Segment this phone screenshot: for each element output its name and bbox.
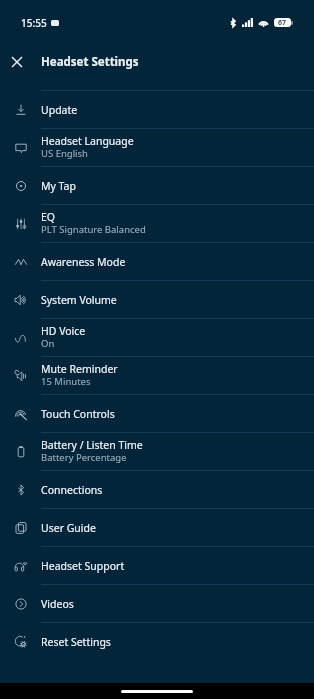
staticText: Videos (41, 597, 74, 611)
button[interactable]: Awareness Mode (0, 243, 314, 281)
staticText: Reset Settings (41, 635, 111, 649)
staticText: User Guide (41, 521, 96, 535)
staticText: System Volume (41, 293, 117, 307)
staticText: On (41, 337, 55, 350)
button[interactable]: Mute Reminder (0, 357, 314, 395)
staticText: Headset Settings (41, 54, 139, 70)
button[interactable]: Close (4, 49, 30, 75)
button[interactable]: My Tap (0, 167, 314, 205)
button[interactable]: System Volume (0, 281, 314, 319)
staticText: HD Voice (41, 324, 86, 338)
button[interactable]: Videos (0, 585, 314, 623)
staticText: Update (41, 103, 78, 117)
button[interactable]: Battery / Listen Time (0, 433, 314, 471)
staticText: PLT Signature Balanced (41, 223, 146, 236)
staticText: 67 (278, 18, 287, 27)
button[interactable]: Update (0, 91, 314, 129)
staticText: Mute Reminder (41, 362, 118, 376)
button[interactable]: Touch Controls (0, 395, 314, 433)
staticText: Awareness Mode (41, 255, 126, 269)
staticText: 15 Minutes (41, 375, 91, 388)
staticText: Headset Language (41, 134, 134, 148)
button[interactable]: Headset Support (0, 547, 314, 585)
button[interactable]: EQ (0, 205, 314, 243)
staticText: US English (41, 147, 88, 160)
button[interactable]: HD Voice (0, 319, 314, 357)
staticText: My Tap (41, 179, 76, 193)
staticText: 15:55 (21, 16, 47, 30)
staticText: Touch Controls (41, 407, 115, 421)
button[interactable]: Headset Language (0, 129, 314, 167)
staticText: Headset Support (41, 559, 125, 573)
button[interactable]: Connections (0, 471, 314, 509)
button[interactable]: User Guide (0, 509, 314, 547)
staticText: Battery Percentage (41, 451, 127, 464)
button[interactable]: Reset Settings (0, 623, 314, 661)
staticText: Battery / Listen Time (41, 438, 143, 452)
staticText: Connections (41, 483, 103, 497)
staticText: EQ (41, 210, 56, 224)
